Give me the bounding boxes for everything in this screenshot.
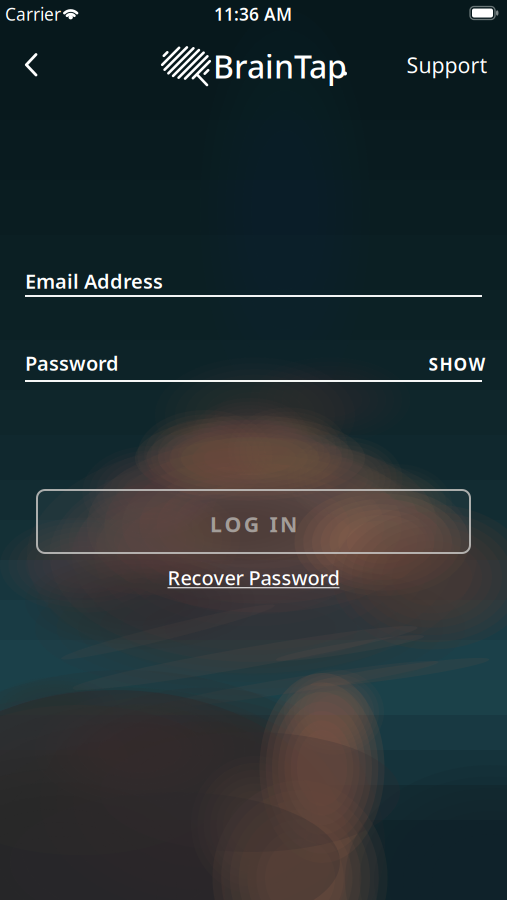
staticText: H xyxy=(439,352,452,375)
staticText: Recover Password xyxy=(167,564,339,591)
button[interactable]: L xyxy=(37,490,470,553)
staticText: O xyxy=(224,510,241,538)
button[interactable]: S xyxy=(424,348,489,379)
staticText: 11:36 AM xyxy=(214,2,292,25)
staticText: I xyxy=(270,510,278,538)
staticText: Email Address xyxy=(25,268,163,294)
staticText: Support xyxy=(406,51,487,79)
staticText: Carrier xyxy=(5,2,61,25)
staticText: O xyxy=(453,352,467,375)
staticText: W xyxy=(468,352,485,375)
button[interactable]: Recover Password xyxy=(167,564,339,591)
staticText: G xyxy=(244,510,259,538)
staticText: Password xyxy=(25,350,119,376)
button[interactable]: Back xyxy=(14,43,48,87)
button[interactable]: Support xyxy=(406,51,487,79)
staticText: N xyxy=(280,510,297,538)
staticText: L xyxy=(210,510,222,538)
staticText: BrainTap xyxy=(213,45,347,87)
staticText: S xyxy=(428,352,438,375)
